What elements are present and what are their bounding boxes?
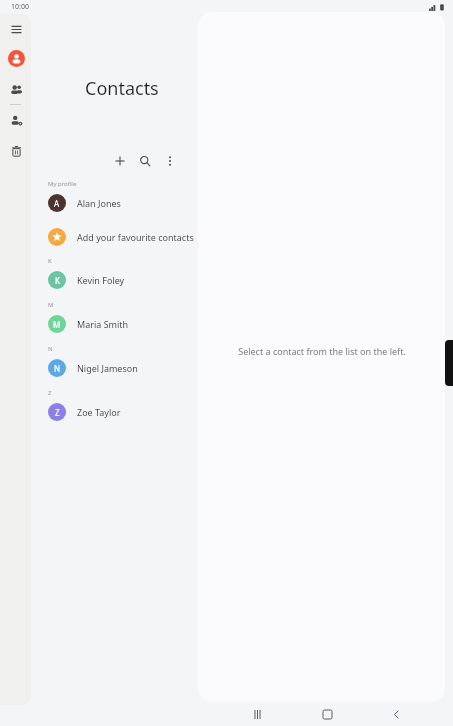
button[interactable]: Z bbox=[31, 400, 198, 424]
button[interactable]: Trash bbox=[3, 138, 29, 164]
button[interactable]: Groups bbox=[3, 76, 29, 102]
button[interactable]: K bbox=[31, 268, 198, 292]
button[interactable]: Contacts bbox=[3, 45, 29, 71]
staticText: M bbox=[48, 301, 54, 309]
staticText: A bbox=[54, 198, 60, 209]
button[interactable]: N bbox=[31, 356, 198, 380]
staticText: Maria Smith bbox=[77, 318, 129, 330]
staticText: My profile bbox=[48, 180, 77, 188]
staticText: Contacts bbox=[85, 76, 159, 101]
button[interactable]: Add your favourite contacts bbox=[31, 225, 198, 249]
staticText: Z bbox=[48, 389, 52, 397]
button[interactable]: Home bbox=[315, 702, 339, 726]
staticText: K bbox=[48, 257, 52, 265]
staticText: Alan Jones bbox=[77, 197, 121, 209]
button[interactable]: Edge panel handle bbox=[445, 340, 453, 386]
button[interactable]: A bbox=[31, 191, 198, 215]
staticText: 10:00 bbox=[11, 2, 29, 12]
button[interactable]: Search bbox=[134, 150, 156, 172]
staticText: M bbox=[53, 319, 61, 330]
button[interactable]: Manage contacts bbox=[3, 107, 29, 133]
button[interactable]: Back bbox=[384, 702, 408, 726]
staticText: Z bbox=[55, 407, 60, 418]
staticText: Select a contact from the list on the le… bbox=[238, 345, 406, 357]
button[interactable]: Recents bbox=[245, 702, 269, 726]
button[interactable]: Add contact bbox=[109, 150, 131, 172]
staticText: Kevin Foley bbox=[77, 274, 125, 286]
staticText: Zoe Taylor bbox=[77, 406, 121, 418]
button[interactable]: Menu bbox=[3, 16, 29, 42]
staticText: K bbox=[55, 275, 60, 286]
staticText: Add your favourite contacts bbox=[77, 231, 194, 243]
staticText: N bbox=[54, 363, 61, 374]
staticText: N bbox=[48, 345, 53, 353]
button[interactable]: More options bbox=[159, 150, 181, 172]
button[interactable]: M bbox=[31, 312, 198, 336]
staticText: Nigel Jameson bbox=[77, 362, 138, 374]
